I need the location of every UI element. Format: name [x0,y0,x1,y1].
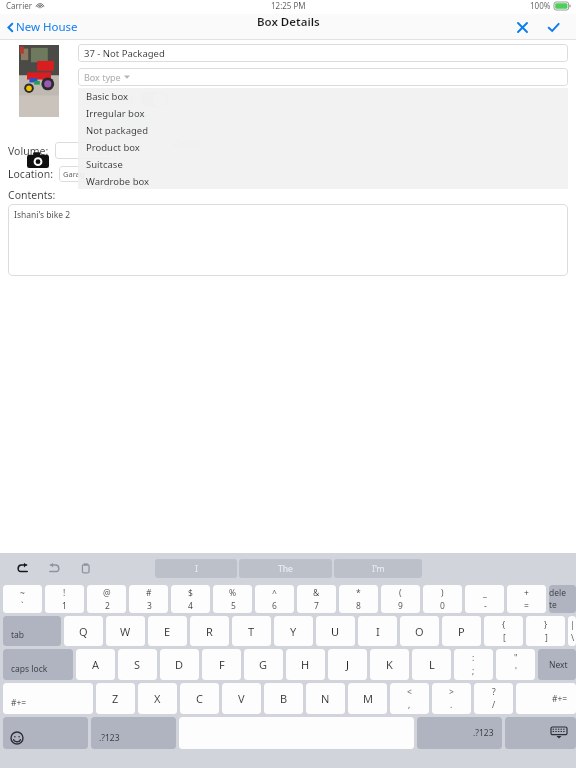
button[interactable]: H [286,649,325,680]
button[interactable]: R [190,616,229,646]
button[interactable]: Ishani's bike 2 [8,204,568,276]
button[interactable]: S [118,649,157,680]
button[interactable]: V [222,683,261,714]
staticText: 0 c [98,145,110,157]
staticText: Not packaged [86,124,149,137]
staticText: $ [188,587,193,599]
button[interactable]: Wardrobe box [78,173,568,189]
button[interactable]: | [568,616,576,646]
button[interactable]: Save [540,14,566,40]
button[interactable]: Undo [12,557,34,579]
button[interactable]: D [160,649,199,680]
button[interactable]: I'm [334,559,422,578]
button[interactable]: > [432,683,471,714]
staticText: @ [103,587,111,599]
button[interactable]: 37 - Not Packaged [78,44,568,62]
button[interactable]: J [328,649,367,680]
button[interactable]: G [244,649,283,680]
button[interactable]: : [454,649,493,680]
staticText: # [146,587,152,599]
button[interactable]: A [76,649,115,680]
button[interactable]: .?123 [417,717,502,749]
button[interactable]: { [484,616,523,646]
button[interactable]: _ [465,585,504,613]
button[interactable]: Basic box [78,88,568,105]
button[interactable]: 0 c [55,142,115,159]
button[interactable]: M [348,683,387,714]
button[interactable]: Box type [78,68,568,86]
button[interactable]: # [129,585,168,613]
button[interactable]: < [390,683,429,714]
staticText: 5 [231,600,236,612]
staticText: I'm [372,563,385,575]
button[interactable]: $ [171,585,210,613]
button[interactable]: N [306,683,345,714]
button[interactable]: ! [45,585,84,613]
button[interactable]: + [507,585,546,613]
button[interactable]: X [138,683,177,714]
button[interactable]: P [442,616,481,646]
button[interactable]: Z [96,683,135,714]
button[interactable]: Next [538,649,576,680]
button[interactable]: @ [87,585,126,613]
staticText: U [331,624,340,639]
button[interactable]: Hide keyboard [505,717,576,749]
button[interactable]: Q [64,616,103,646]
button[interactable]: delete [549,585,576,613]
button[interactable]: Product box [78,139,568,156]
button[interactable]: Cancel [509,14,535,40]
button[interactable]: caps lock [3,649,73,680]
staticText: 8 [356,600,361,612]
staticText: 100% [530,0,551,11]
button[interactable]: O [400,616,439,646]
staticText: Unpacked [84,93,134,107]
button[interactable]: New House [5,19,78,35]
button[interactable]: Emoji [3,717,88,749]
button[interactable]: % [213,585,252,613]
button[interactable]: I [358,616,397,646]
button[interactable]: Not packaged [78,122,568,139]
staticText: V [238,691,245,706]
button[interactable]: ~ [3,585,42,613]
button[interactable]: The [239,559,332,578]
button[interactable]: C [180,683,219,714]
button[interactable]: tab [3,616,61,646]
button[interactable]: ^ [255,585,294,613]
button[interactable]: ? [474,683,513,714]
staticText: .?123 [99,732,120,744]
button[interactable]: F [202,649,241,680]
button[interactable]: #+= [516,683,576,714]
button[interactable]: Take photo [27,150,49,172]
button[interactable]: .?123 [91,717,176,749]
button[interactable]: ( [381,585,420,613]
staticText: M [363,691,373,706]
button[interactable]: W [106,616,145,646]
button[interactable]: B [264,683,303,714]
button[interactable]: Irregular box [78,105,568,122]
button[interactable]: * [339,585,378,613]
button[interactable]: Y [274,616,313,646]
button[interactable]: " [496,649,535,680]
button[interactable]: Redo [43,557,65,579]
staticText: & [313,587,320,599]
button[interactable]: U [316,616,355,646]
button[interactable]: ) [423,585,462,613]
button[interactable]: I [155,559,237,578]
button[interactable]: T [232,616,271,646]
button[interactable]: Paste [74,557,96,579]
staticText: Basic box [86,90,128,103]
staticText: E [164,624,171,639]
button[interactable]: K [370,649,409,680]
staticText: 0 [440,600,445,612]
button[interactable]: } [526,616,565,646]
button[interactable]: Garag [59,166,95,182]
button[interactable]: #+= [3,683,93,714]
staticText: Garag [63,169,85,179]
button[interactable]: E [148,616,187,646]
button[interactable]: Suitcase [78,156,568,173]
button[interactable]: & [297,585,336,613]
staticText: Product box [86,141,140,154]
button[interactable]: L [412,649,451,680]
